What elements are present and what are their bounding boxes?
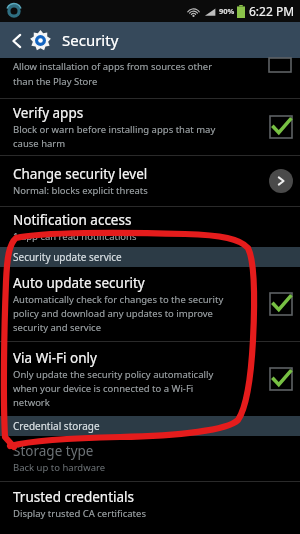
staticText: Notification access	[13, 211, 132, 229]
staticText: Change security level	[13, 165, 148, 183]
button[interactable]: Navigate up	[0, 22, 62, 58]
staticText: Security update service	[13, 250, 122, 264]
staticText: 6:22 PM	[249, 3, 295, 19]
staticText: 1 app can read notifications	[13, 230, 137, 243]
button[interactable]: Via Wi-Fi only	[0, 342, 300, 416]
button[interactable]: Checked	[270, 293, 292, 315]
staticText: policy and download any updates to impro…	[13, 307, 213, 320]
staticText: Block or warn before installing apps tha…	[13, 123, 216, 136]
staticText: Allow installation of apps from sources …	[13, 60, 213, 73]
staticText: cause harm	[13, 137, 66, 150]
button[interactable]: Checked	[270, 368, 292, 390]
button[interactable]: Unchecked	[269, 58, 291, 72]
staticText: 90%	[219, 6, 235, 16]
staticText: Trusted credentials	[13, 488, 135, 506]
staticText: Only update the security policy automati…	[13, 368, 214, 381]
staticText: Verify apps	[13, 104, 84, 122]
staticText: Auto update security	[13, 274, 145, 292]
button[interactable]: Change security level	[269, 169, 293, 193]
button[interactable]: Trusted credentials	[0, 482, 300, 527]
staticText: Back up to hardware	[13, 461, 106, 474]
staticText: Automatically check for changes to the s…	[13, 293, 224, 306]
button[interactable]: Storage type	[0, 436, 300, 481]
staticText: Display trusted CA certificates	[13, 507, 146, 520]
staticText: network	[13, 396, 50, 409]
button[interactable]: Auto update security	[0, 267, 300, 341]
staticText: Security	[62, 30, 119, 50]
staticText: Via Wi-Fi only	[13, 349, 97, 367]
staticText: Storage type	[13, 442, 94, 460]
button[interactable]: Verify apps	[0, 99, 300, 155]
staticText: Normal: blocks explicit threats	[13, 184, 148, 197]
staticText: Credential storage	[13, 419, 100, 433]
button[interactable]: Notification access	[0, 207, 300, 247]
button[interactable]: Checked	[270, 116, 292, 138]
staticText: than the Play Store	[13, 75, 98, 88]
button[interactable]: Change security level	[0, 156, 300, 206]
staticText: security and service	[13, 321, 101, 334]
staticText: when your device is connected to a Wi-Fi	[13, 382, 194, 395]
